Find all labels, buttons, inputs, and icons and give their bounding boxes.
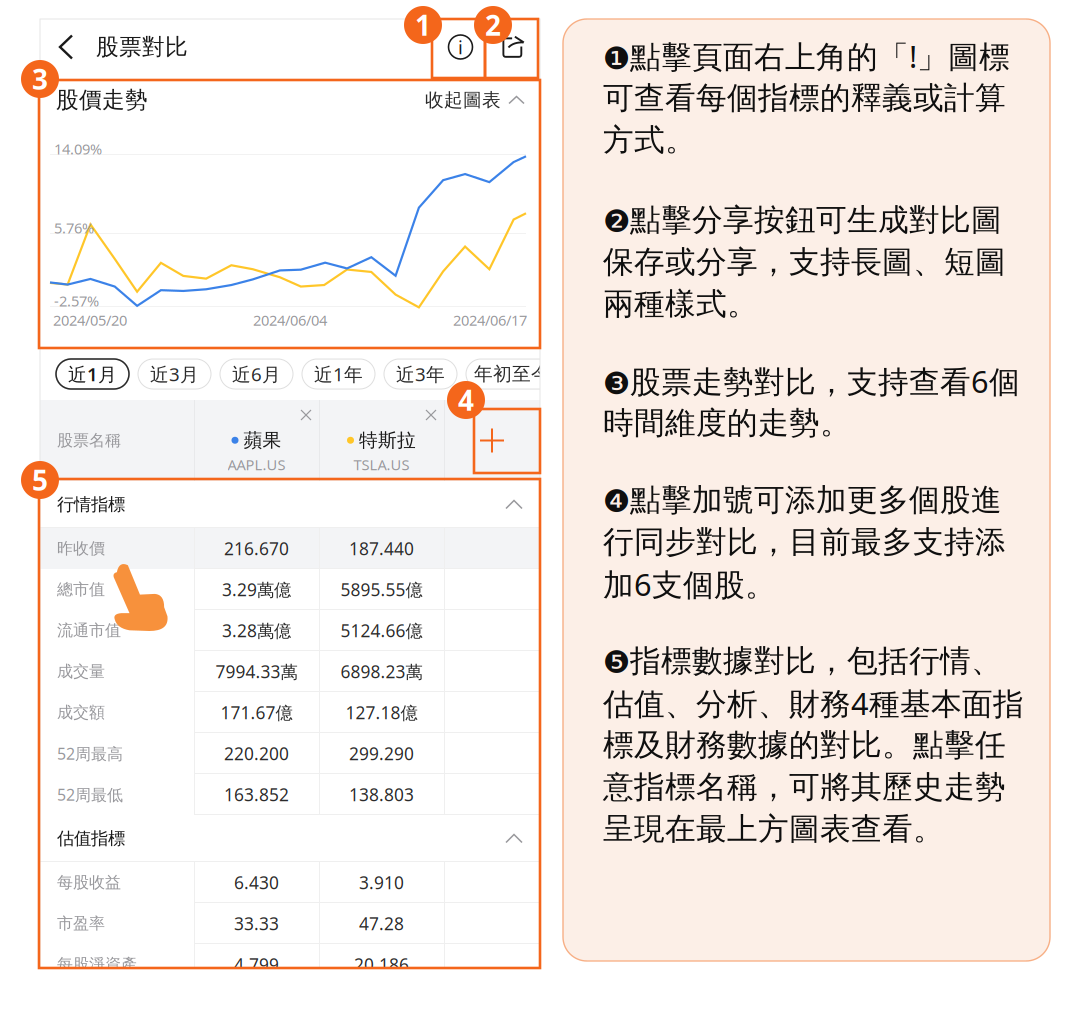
button[interactable]: Info	[434, 19, 487, 75]
staticText: 2	[485, 6, 501, 44]
staticText: 市盈率	[57, 914, 105, 933]
staticText: 股票名稱	[57, 431, 121, 450]
staticText: 兩種樣式。	[603, 285, 758, 323]
button[interactable]: 總市值	[40, 569, 540, 610]
staticText: 5	[32, 461, 48, 499]
staticText: 估值指標	[57, 828, 125, 849]
staticText: 5124.66億	[340, 619, 422, 642]
button[interactable]: 近1月	[56, 359, 129, 389]
staticText: 220.200	[224, 742, 289, 765]
button[interactable]: 52周最低	[40, 774, 540, 815]
staticText: 187.440	[349, 537, 414, 560]
staticText: i	[458, 35, 463, 59]
staticText: 保存或分享，支持長圖、短圖	[603, 243, 1006, 281]
staticText: 7994.33萬	[215, 660, 297, 683]
staticText: ❺指標數據對比，包括行情、	[603, 642, 1002, 680]
staticText: AAPL.US	[227, 455, 285, 474]
staticText: 成交額	[57, 703, 105, 722]
staticText: 意指標名稱，可將其歷史走勢	[603, 768, 1006, 806]
button[interactable]: 成交額	[40, 692, 540, 733]
staticText: 216.670	[224, 537, 289, 560]
staticText: ❸股票走勢對比，支持查看6個	[603, 361, 1020, 401]
staticText: 6898.23萬	[340, 660, 422, 683]
staticText: 3	[32, 60, 48, 98]
button[interactable]: 近3年	[384, 359, 457, 389]
staticText: 5895.55億	[340, 578, 422, 601]
button[interactable]: 52周最高	[40, 733, 540, 774]
staticText: 4	[458, 381, 474, 419]
button[interactable]: 估值指標	[40, 815, 540, 862]
staticText: 行情指標	[57, 494, 125, 515]
staticText: ❹點擊加號可添加更多個股進	[603, 481, 1002, 519]
staticText: ❷點擊分享按鈕可生成對比圖	[603, 201, 1002, 239]
staticText: 近3月	[150, 362, 199, 386]
staticText: 成交量	[57, 662, 105, 681]
button[interactable]: 收起圖表	[394, 78, 524, 122]
staticText: 標及財務數據的對比。點擊任	[603, 726, 1006, 764]
staticText: 4.799	[234, 953, 279, 976]
button[interactable]: Back	[43, 19, 89, 75]
staticText: 3.29萬億	[222, 578, 291, 601]
button[interactable]: Remove AAPL.US	[293, 404, 319, 426]
button[interactable]: 昨收價	[40, 528, 540, 569]
staticText: 52周最高	[57, 743, 123, 764]
button[interactable]: 近3月	[138, 359, 211, 389]
staticText: 5.76%	[54, 218, 94, 237]
staticText: 可查看每個指標的釋義或計算	[603, 79, 1006, 117]
button[interactable]: 每股收益	[40, 862, 540, 903]
staticText: 每股收益	[57, 873, 121, 892]
button[interactable]: Remove TSLA.US	[418, 404, 444, 426]
staticText: -2.57%	[54, 291, 99, 310]
button[interactable]: 流通市值	[40, 610, 540, 651]
button[interactable]: 成交量	[40, 651, 540, 692]
button[interactable]: Add stock	[444, 400, 540, 481]
staticText: 127.18億	[345, 701, 417, 724]
staticText: 14.09%	[54, 139, 102, 158]
button[interactable]: 年初至今	[466, 359, 558, 389]
staticText: 年初至今	[474, 362, 550, 385]
staticText: 3.28萬億	[222, 619, 291, 642]
staticText: 1	[415, 6, 431, 44]
staticText: 2024/06/17	[453, 310, 527, 330]
staticText: 299.290	[349, 742, 414, 765]
button[interactable]: 近6月	[220, 359, 293, 389]
staticText: 近3年	[396, 362, 445, 386]
staticText: 股價走勢	[56, 86, 148, 114]
staticText: 股票對比	[96, 33, 188, 61]
staticText: 47.28	[359, 912, 404, 935]
staticText: 2024/06/04	[253, 310, 327, 330]
staticText: 2024/05/20	[53, 310, 127, 330]
staticText: 收起圖表	[425, 88, 501, 111]
staticText: 近1月	[68, 362, 117, 386]
staticText: 呈現在最上方圖表查看。	[603, 810, 944, 848]
staticText: 每股淨資產	[57, 955, 137, 974]
staticText: 流通市值	[57, 621, 121, 640]
staticText: 20.186	[354, 953, 409, 976]
staticText: 33.33	[234, 912, 279, 935]
staticText: 方式。	[603, 121, 696, 159]
staticText: 估值、分析、財務4種基本面指	[603, 683, 1024, 723]
staticText: 行同步對比，目前最多支持添	[603, 523, 1006, 561]
button[interactable]: 行情指標	[40, 481, 540, 528]
button[interactable]: Share	[487, 19, 540, 75]
staticText: TSLA.US	[353, 455, 409, 474]
staticText: 總市值	[57, 580, 105, 599]
staticText: 171.67億	[220, 701, 292, 724]
staticText: 蘋果	[243, 429, 281, 452]
staticText: 特斯拉	[359, 429, 416, 452]
staticText: 時間維度的走勢。	[603, 404, 851, 442]
staticText: 138.803	[349, 783, 414, 806]
button[interactable]: 近1年	[302, 359, 375, 389]
staticText: 加6支個股。	[603, 564, 776, 604]
staticText: ❶點擊頁面右上角的「!」圖標	[603, 36, 1010, 76]
staticText: 近6月	[232, 362, 281, 386]
staticText: 6.430	[234, 871, 279, 894]
button[interactable]: 市盈率	[40, 903, 540, 944]
staticText: 3.910	[359, 871, 404, 894]
staticText: 52周最低	[57, 784, 123, 805]
button[interactable]: 每股淨資產	[40, 944, 540, 985]
staticText: 近1年	[314, 362, 363, 386]
staticText: 昨收價	[57, 539, 105, 558]
staticText: 163.852	[224, 783, 289, 806]
